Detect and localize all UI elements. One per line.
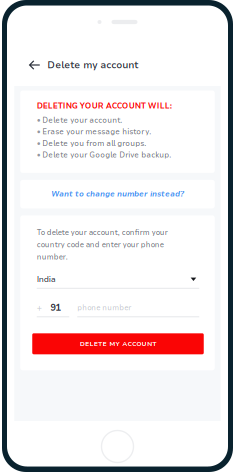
- staticText: Erase your message history.: [42, 127, 151, 137]
- staticText: Delete my account: [47, 58, 138, 72]
- staticText: DELETING YOUR ACCOUNT WILL:: [37, 101, 172, 111]
- button[interactable]: India: [37, 274, 199, 289]
- staticText: number.: [37, 252, 68, 262]
- button[interactable]: Back: [21, 44, 47, 86]
- staticText: •: [37, 127, 41, 137]
- staticText: country code and enter your phone: [37, 240, 164, 250]
- staticText: Want to change number instead?: [51, 189, 184, 199]
- staticText: +: [37, 302, 42, 314]
- staticText: Delete you from all groups.: [42, 138, 146, 148]
- staticText: •: [37, 138, 41, 149]
- staticText: India: [37, 274, 56, 285]
- staticText: Delete your Google Drive backup.: [42, 150, 171, 160]
- staticText: DELETE MY ACCOUNT: [80, 339, 156, 348]
- staticText: •: [37, 115, 41, 125]
- staticText: Delete your account.: [42, 115, 122, 125]
- staticText: •: [37, 150, 41, 160]
- staticText: 91: [50, 302, 60, 314]
- staticText: To delete your account, confirm your: [37, 228, 168, 237]
- button[interactable]: Want to change number instead?: [20, 180, 215, 208]
- staticText: phone number: [77, 303, 131, 313]
- button[interactable]: DELETE MY ACCOUNT: [32, 333, 204, 354]
